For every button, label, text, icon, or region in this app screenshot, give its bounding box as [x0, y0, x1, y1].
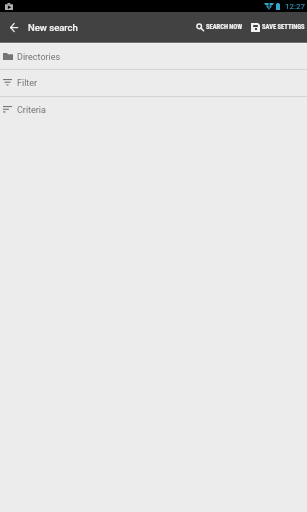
- staticText: New search: [28, 22, 78, 33]
- button[interactable]: Directories: [0, 44, 307, 69]
- button[interactable]: SEARCH NOW: [190, 12, 244, 42]
- staticText: Filter: [17, 78, 38, 89]
- staticText: SEARCH NOW: [206, 23, 243, 31]
- staticText: 12:27: [285, 2, 305, 11]
- button[interactable]: Criteria: [0, 97, 307, 123]
- staticText: Criteria: [17, 105, 46, 116]
- button[interactable]: SAVE SETTINGS: [244, 12, 307, 42]
- button[interactable]: Filter: [0, 70, 307, 96]
- button[interactable]: Navigate up: [0, 12, 28, 42]
- staticText: Directories: [17, 52, 61, 63]
- staticText: SAVE SETTINGS: [262, 23, 305, 31]
